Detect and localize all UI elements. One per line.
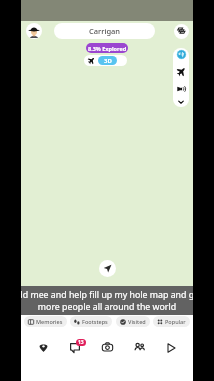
button[interactable]: Globe xyxy=(173,48,189,61)
button[interactable]: Chat xyxy=(65,328,85,381)
button[interactable]: Popular xyxy=(153,316,190,327)
staticText: Visited xyxy=(128,318,146,325)
button[interactable]: Map xyxy=(33,328,53,381)
button[interactable]: Flights xyxy=(173,65,189,78)
button[interactable]: Memories xyxy=(24,316,67,327)
staticText: Memories xyxy=(36,318,63,325)
staticText: Footsteps xyxy=(82,318,108,325)
staticText: Carrigan xyxy=(89,26,121,36)
staticText: Add mee and help fill up my hole map and… xyxy=(21,289,193,313)
staticText: 3D xyxy=(104,57,112,65)
button[interactable]: 8.3% Explored xyxy=(86,43,128,53)
button[interactable]: Camera xyxy=(97,328,117,381)
button[interactable]: Visited xyxy=(116,316,150,327)
button[interactable]: Friends xyxy=(129,328,149,381)
button[interactable]: Discover xyxy=(161,328,181,381)
button[interactable]: Profile xyxy=(26,23,42,39)
button[interactable]: Announcements xyxy=(173,82,189,95)
staticText: Popular xyxy=(165,318,186,325)
button[interactable]: Carrigan xyxy=(54,23,155,39)
button[interactable]: Footsteps xyxy=(70,316,112,327)
button[interactable]: Collapse xyxy=(173,95,189,107)
staticText: 13 xyxy=(78,339,84,346)
button[interactable]: My location xyxy=(99,260,116,277)
button[interactable]: 3D xyxy=(84,55,127,66)
staticText: 8.3% Explored xyxy=(88,45,127,52)
button[interactable]: Map layers xyxy=(174,24,189,39)
